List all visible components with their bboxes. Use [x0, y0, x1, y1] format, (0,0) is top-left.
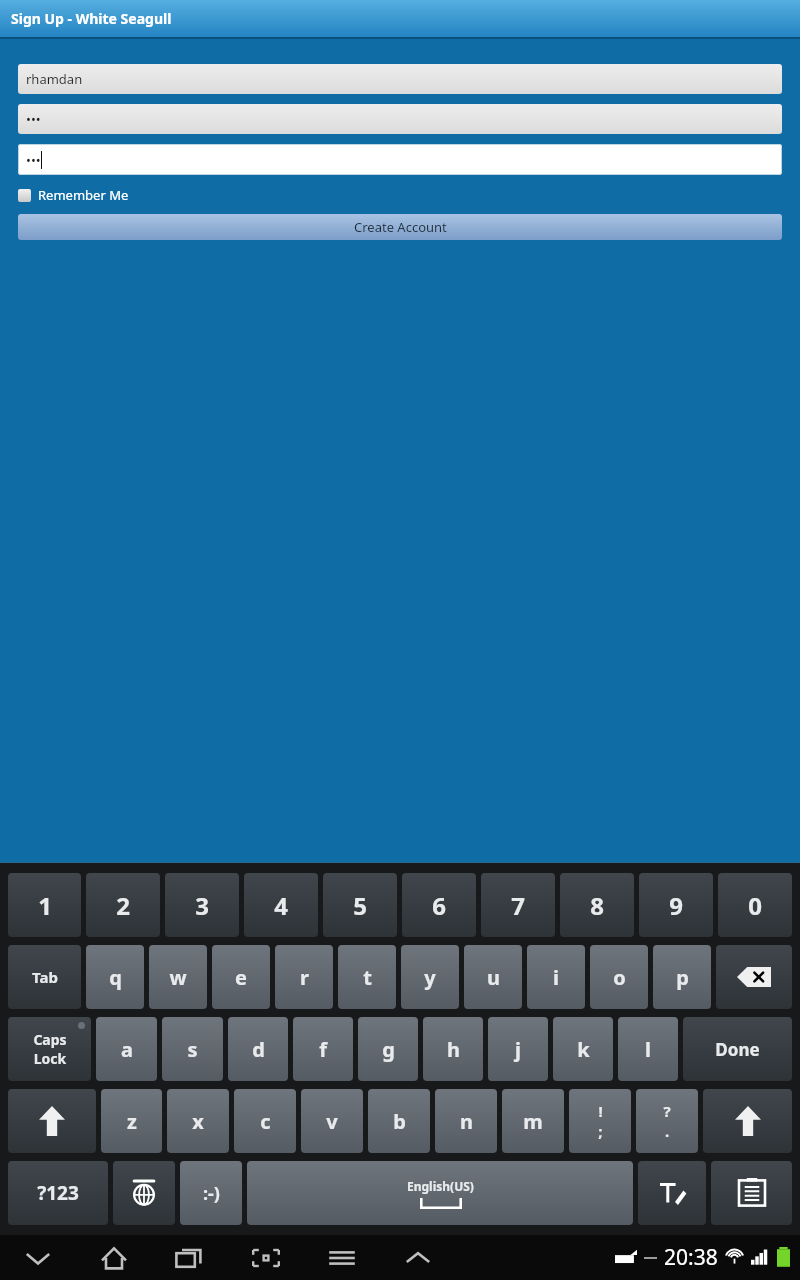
button[interactable]: n	[435, 1089, 497, 1153]
staticText: c	[260, 1108, 271, 1135]
staticText: i	[553, 964, 559, 991]
button[interactable]: s	[162, 1017, 223, 1081]
staticText: l	[645, 1036, 651, 1063]
staticText: b	[393, 1108, 406, 1135]
staticText: 4	[274, 889, 288, 922]
button[interactable]: x	[167, 1089, 229, 1153]
button[interactable]: 6	[402, 873, 476, 937]
button[interactable]: 0	[718, 873, 792, 937]
staticText: 7	[511, 889, 525, 922]
button[interactable]: v	[301, 1089, 363, 1153]
staticText: ?123	[37, 1180, 79, 1206]
button[interactable]: rhamdan	[18, 64, 782, 94]
button[interactable]: 8	[560, 873, 634, 937]
staticText: a	[121, 1036, 133, 1063]
button[interactable]: ! ;	[569, 1089, 631, 1153]
button[interactable]: 9	[639, 873, 713, 937]
button[interactable]: Create Account	[18, 214, 782, 240]
staticText: 0	[748, 889, 762, 922]
button[interactable]: 2	[86, 873, 160, 937]
staticText: p	[676, 964, 689, 991]
button[interactable]: t	[338, 945, 396, 1009]
button[interactable]: b	[368, 1089, 430, 1153]
button[interactable]: •••	[18, 144, 782, 175]
button[interactable]: q	[86, 945, 144, 1009]
staticText: d	[252, 1036, 265, 1063]
staticText: h	[447, 1036, 460, 1063]
button[interactable]: z	[101, 1089, 162, 1153]
button[interactable]: Caps Lock	[8, 1017, 91, 1081]
button[interactable]: English(US)	[247, 1161, 633, 1225]
staticText: 9	[669, 889, 683, 922]
button[interactable]: Remember Me	[18, 184, 129, 206]
other: Clipboard	[711, 1161, 792, 1225]
staticText: •••	[26, 110, 41, 128]
other: Handwriting input	[638, 1161, 706, 1225]
button[interactable]: Hide keyboard	[18, 1238, 58, 1278]
staticText: q	[109, 964, 122, 991]
button[interactable]: ? .	[636, 1089, 698, 1153]
button[interactable]: :-)	[180, 1161, 242, 1225]
staticText: 6	[432, 889, 446, 922]
button[interactable]: Backspace	[716, 945, 792, 1009]
button[interactable]: g	[358, 1017, 418, 1081]
button[interactable]: p	[653, 945, 711, 1009]
other: Change language	[113, 1161, 175, 1225]
button[interactable]: d	[228, 1017, 288, 1081]
button[interactable]: o	[590, 945, 648, 1009]
staticText: :-)	[203, 1181, 220, 1206]
button[interactable]: l	[618, 1017, 678, 1081]
staticText: 8	[590, 889, 604, 922]
button[interactable]: Tab	[8, 945, 81, 1009]
button[interactable]: a	[96, 1017, 157, 1081]
other: Shift	[703, 1089, 792, 1153]
button[interactable]: Menu	[322, 1238, 362, 1278]
button[interactable]: •••	[18, 104, 782, 134]
button[interactable]: y	[401, 945, 459, 1009]
staticText: Tab	[32, 967, 58, 987]
button[interactable]: 5	[323, 873, 397, 937]
button[interactable]: Change language	[113, 1161, 175, 1225]
staticText: Remember Me	[38, 186, 129, 204]
button[interactable]: u	[464, 945, 522, 1009]
staticText: •••	[26, 151, 41, 169]
staticText: u	[487, 964, 500, 991]
staticText: 20:38	[664, 1243, 718, 1272]
button[interactable]: k	[553, 1017, 613, 1081]
button[interactable]: 3	[165, 873, 239, 937]
button[interactable]: i	[527, 945, 585, 1009]
staticText: e	[235, 964, 247, 991]
button[interactable]: ?123	[8, 1161, 108, 1225]
button[interactable]: w	[149, 945, 207, 1009]
button[interactable]: Screenshot	[246, 1238, 286, 1278]
button[interactable]: Shift	[703, 1089, 792, 1153]
button[interactable]: 7	[481, 873, 555, 937]
button[interactable]: 1	[8, 873, 81, 937]
button[interactable]: f	[293, 1017, 353, 1081]
staticText: w	[169, 964, 187, 991]
button[interactable]: Handwriting input	[638, 1161, 706, 1225]
staticText: Create Account	[354, 218, 447, 236]
staticText: 2	[116, 889, 130, 922]
staticText: z	[127, 1108, 137, 1135]
staticText: 5	[353, 889, 367, 922]
staticText: o	[613, 964, 626, 991]
staticText: t	[363, 964, 372, 991]
staticText: v	[326, 1108, 338, 1135]
button[interactable]: h	[423, 1017, 483, 1081]
button[interactable]: m	[502, 1089, 564, 1153]
button[interactable]: e	[212, 945, 270, 1009]
button[interactable]: j	[488, 1017, 548, 1081]
button[interactable]: Expand	[398, 1238, 438, 1278]
button[interactable]: c	[234, 1089, 296, 1153]
button[interactable]: Home	[94, 1238, 134, 1278]
staticText: k	[577, 1036, 590, 1063]
button[interactable]: Done	[683, 1017, 792, 1081]
staticText: English(US)	[407, 1178, 474, 1194]
button[interactable]: 4	[244, 873, 318, 937]
button[interactable]: r	[275, 945, 333, 1009]
button[interactable]: Shift	[8, 1089, 96, 1153]
button[interactable]: Recent apps	[170, 1238, 210, 1278]
button[interactable]: Clipboard	[711, 1161, 792, 1225]
staticText: g	[382, 1036, 395, 1063]
